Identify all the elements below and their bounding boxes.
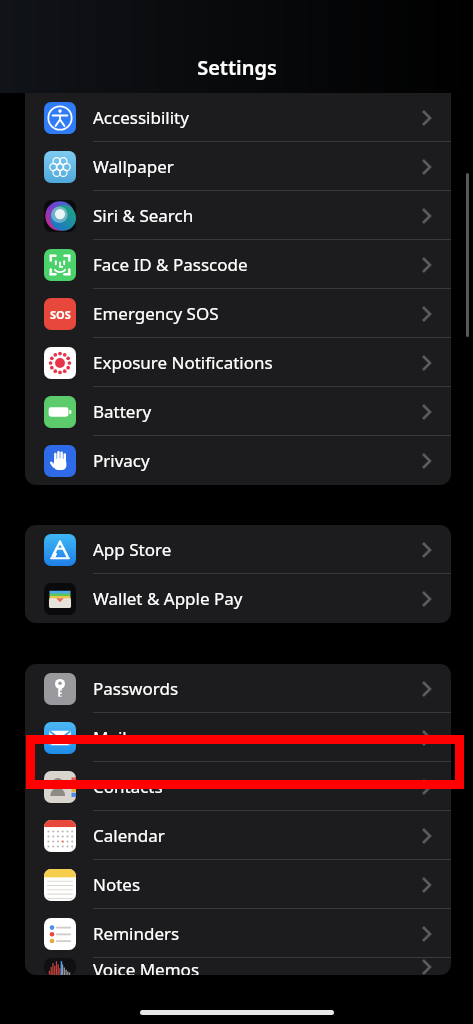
staticText: SOS — [50, 307, 71, 322]
button[interactable]: Wallpaper — [25, 142, 451, 191]
button[interactable]: Mail — [25, 713, 451, 762]
staticText: App Store — [93, 538, 172, 561]
button[interactable]: Battery — [25, 387, 451, 436]
staticText: Accessibility — [93, 106, 189, 129]
button[interactable]: Exposure Notifications — [25, 338, 451, 387]
staticText: Calendar — [93, 824, 165, 847]
staticText: Siri & Search — [93, 204, 194, 227]
staticText: Battery — [93, 400, 152, 423]
staticText: Wallpaper — [93, 155, 174, 178]
staticText: Passwords — [93, 677, 179, 700]
button[interactable]: Voice Memos — [25, 958, 451, 975]
button[interactable]: Siri & Search — [25, 191, 451, 240]
button[interactable]: Reminders — [25, 909, 451, 958]
button[interactable]: Accessibility — [25, 93, 451, 142]
staticText: Mail — [93, 726, 127, 749]
staticText: Contacts — [93, 775, 163, 798]
button[interactable]: Privacy — [25, 436, 451, 485]
staticText: Exposure Notifications — [93, 351, 273, 374]
button[interactable]: Passwords — [25, 664, 451, 713]
staticText: Notes — [93, 873, 141, 896]
staticText: Privacy — [93, 449, 150, 472]
button[interactable]: Notes — [25, 860, 451, 909]
staticText: Settings — [197, 54, 277, 81]
button[interactable]: SOS — [25, 289, 451, 338]
button[interactable]: Face ID & Passcode — [25, 240, 451, 289]
button[interactable]: Wallet & Apple Pay — [25, 574, 451, 623]
button[interactable]: Contacts — [25, 762, 451, 811]
staticText: Reminders — [93, 922, 180, 945]
button[interactable]: App Store — [25, 525, 451, 574]
button[interactable]: Calendar — [25, 811, 451, 860]
staticText: Wallet & Apple Pay — [93, 587, 243, 610]
staticText: Face ID & Passcode — [93, 253, 248, 276]
staticText: Voice Memos — [93, 958, 200, 975]
staticText: Emergency SOS — [93, 302, 219, 325]
